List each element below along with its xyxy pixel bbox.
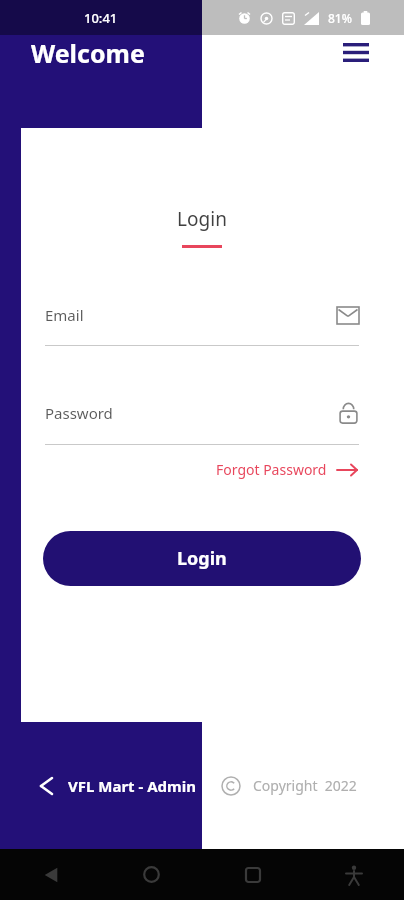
button[interactable]: Email: [45, 300, 359, 346]
staticText: Login: [177, 206, 227, 232]
staticText: Copyright 2022: [253, 776, 357, 795]
staticText: 81%: [328, 10, 352, 26]
button[interactable]: Menu: [336, 34, 376, 70]
staticText: Email: [45, 305, 84, 325]
staticText: 10:41: [84, 9, 118, 27]
staticText: Welcome: [31, 36, 145, 70]
button[interactable]: Home: [101, 849, 202, 900]
button[interactable]: VFL Mart - Admin: [0, 722, 202, 849]
button[interactable]: Forgot Password: [214, 455, 359, 484]
button[interactable]: Password: [45, 398, 359, 445]
button[interactable]: Accessibility: [303, 849, 404, 900]
button[interactable]: Login: [43, 531, 361, 586]
staticText: Forgot Password: [216, 460, 327, 479]
staticText: Login: [177, 546, 227, 571]
staticText: VFL Mart - Admin: [68, 776, 196, 796]
button[interactable]: Back: [0, 849, 101, 900]
staticText: Password: [45, 403, 113, 423]
button[interactable]: Recents: [202, 849, 303, 900]
